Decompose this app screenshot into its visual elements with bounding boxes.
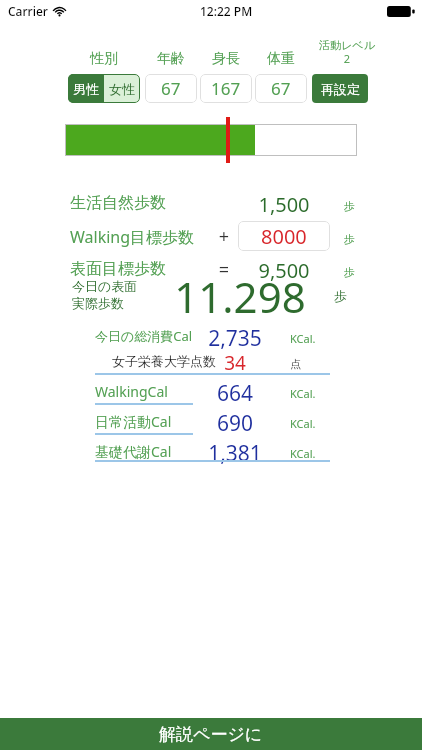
staticText: 解説ページに	[159, 724, 263, 745]
staticText: 女子栄養大学点数	[112, 353, 216, 369]
staticText: 体重	[255, 50, 307, 68]
staticText: 1,500	[238, 191, 330, 218]
staticText: 基礎代謝Cal	[95, 442, 172, 461]
staticText: WalkingCal	[95, 382, 168, 401]
button[interactable]: 男性	[68, 74, 104, 103]
staticText: 性別	[68, 50, 140, 68]
staticText: 再設定	[321, 81, 360, 97]
staticText: KCal.	[290, 386, 316, 401]
staticText: 身長	[200, 50, 252, 68]
staticText: 167	[211, 77, 241, 100]
staticText: 表面目標歩数	[70, 259, 230, 279]
button[interactable]: 67	[255, 74, 307, 103]
staticText: 生活自然歩数	[70, 193, 230, 213]
staticText: 今日の表面 実際歩数	[72, 278, 152, 312]
button[interactable]: 解説ページに	[0, 718, 422, 750]
staticText: 点	[290, 357, 301, 371]
staticText: 8000	[261, 223, 307, 250]
button[interactable]: 67	[145, 74, 197, 103]
staticText: Carrier	[8, 3, 48, 19]
staticText: 日常活動Cal	[95, 412, 172, 431]
staticText: 歩	[344, 232, 355, 246]
staticText: 12:22 PM	[200, 3, 253, 19]
staticText: 歩	[344, 265, 355, 279]
staticText: +	[214, 224, 234, 249]
button[interactable]: 女性	[104, 74, 140, 103]
staticText: KCal.	[290, 331, 316, 346]
staticText: KCal.	[290, 446, 316, 461]
button[interactable]: 167	[200, 74, 252, 103]
staticText: =	[214, 257, 234, 282]
staticText: 9,500	[238, 257, 330, 284]
staticText: 男性	[73, 81, 99, 97]
staticText: 34	[180, 350, 290, 374]
staticText: 664	[180, 379, 290, 408]
staticText: 女性	[109, 81, 135, 97]
staticText: 11.298	[155, 268, 325, 318]
staticText: 2,735	[180, 324, 290, 350]
staticText: 1,381	[180, 439, 290, 468]
staticText: 歩	[334, 288, 347, 304]
button[interactable]: 再設定	[312, 74, 368, 103]
staticText: 活動レベル 2	[312, 38, 382, 66]
staticText: Walking目標歩数	[70, 226, 230, 248]
staticText: 690	[180, 409, 290, 438]
staticText: 歩	[344, 199, 355, 213]
staticText: 67	[271, 77, 291, 100]
staticText: 年齢	[145, 50, 197, 68]
staticText: 今日の総消費Cal	[95, 327, 193, 345]
button[interactable]: 8000	[238, 221, 330, 251]
staticText: KCal.	[290, 416, 316, 431]
staticText: 67	[161, 77, 181, 100]
